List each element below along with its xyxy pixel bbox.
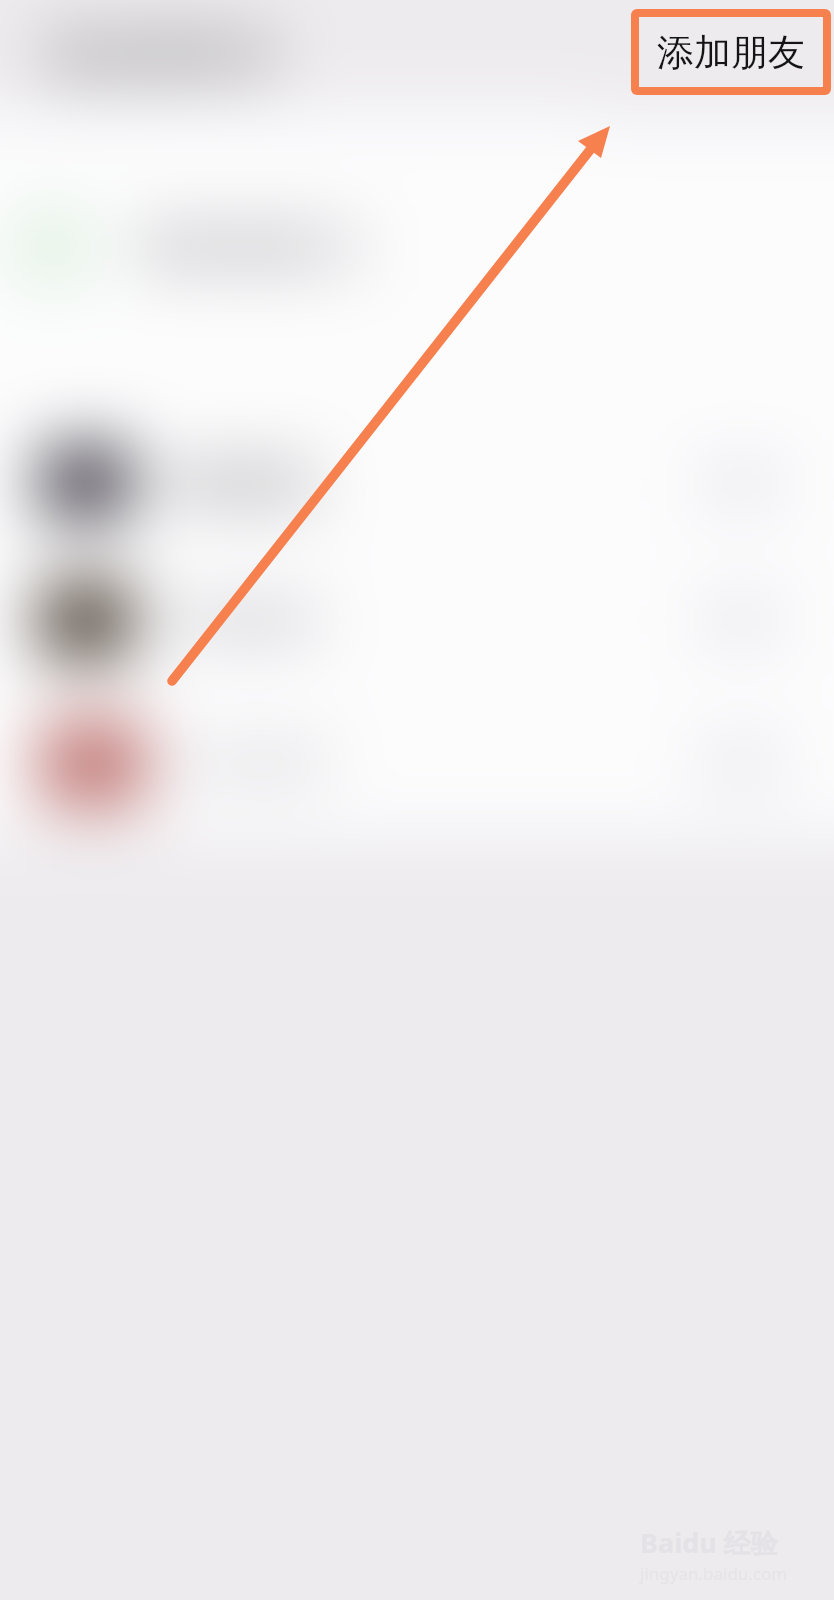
staticText: 新的朋友们: [142, 220, 362, 275]
staticText: 添加朋友: [657, 29, 805, 76]
staticText: Baidu 经验: [640, 1524, 778, 1561]
staticText: 好友名: [174, 453, 318, 513]
staticText: 微信通讯录: [48, 27, 278, 85]
button[interactable]: 添加朋友: [639, 17, 823, 87]
staticText: 朋友昵称: [174, 598, 318, 643]
